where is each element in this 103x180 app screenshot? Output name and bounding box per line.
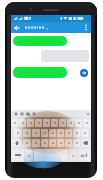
button[interactable] [57,129,64,137]
button[interactable] [23,129,31,137]
button[interactable] [83,119,90,127]
button[interactable] [73,139,80,147]
button[interactable]: Backspace [81,139,90,147]
button[interactable] [41,139,48,147]
button[interactable] [32,129,40,137]
button[interactable]: Space [34,149,68,161]
button[interactable] [23,139,31,147]
button[interactable]: Symbols [12,149,24,161]
button[interactable]: Comma [25,149,33,161]
button[interactable]: Send [80,69,88,77]
button[interactable] [59,119,66,127]
button[interactable] [13,36,67,46]
button[interactable] [49,129,56,137]
button[interactable] [13,67,67,78]
button[interactable]: More options [80,22,91,33]
button[interactable]: Shift [12,139,22,147]
button[interactable] [49,139,56,147]
button[interactable]: Search [31,111,37,117]
button[interactable]: Period [69,149,77,161]
button[interactable]: Hide keyboard [84,110,91,117]
button[interactable] [27,119,34,127]
button[interactable]: Menu [13,111,19,117]
button[interactable] [41,129,48,137]
button[interactable] [19,119,26,127]
button[interactable]: Back [11,22,22,33]
button[interactable]: GIF [25,111,31,117]
button[interactable] [14,129,22,137]
button[interactable] [12,119,18,127]
button[interactable] [32,139,40,147]
button[interactable] [73,129,80,137]
button[interactable] [65,139,72,147]
button[interactable] [43,119,50,127]
button[interactable] [81,129,88,137]
button[interactable]: Enter [78,149,90,161]
button[interactable] [65,129,72,137]
button[interactable] [35,119,42,127]
button[interactable] [51,119,58,127]
button[interactable] [25,22,65,33]
button[interactable]: Stickers [19,111,25,117]
button[interactable] [75,119,82,127]
button[interactable] [67,119,74,127]
button[interactable] [57,139,64,147]
